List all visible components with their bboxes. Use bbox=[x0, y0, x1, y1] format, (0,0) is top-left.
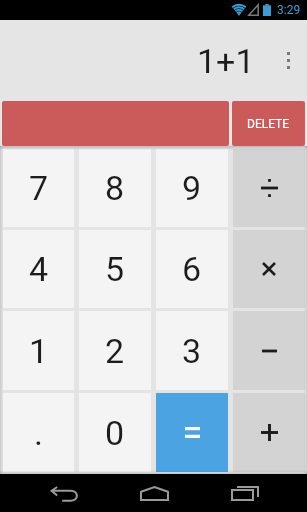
button[interactable]: 2 bbox=[79, 311, 151, 390]
button[interactable]: 5 bbox=[79, 230, 151, 308]
staticText: 6 bbox=[182, 249, 202, 289]
button[interactable]: DELETE bbox=[232, 101, 305, 146]
button[interactable]: Recent apps bbox=[204, 474, 286, 512]
staticText: DELETE bbox=[247, 117, 290, 131]
staticText: 3 bbox=[182, 331, 202, 371]
staticText: 1 bbox=[29, 331, 49, 371]
button[interactable]: 0 bbox=[79, 393, 151, 472]
button[interactable] bbox=[233, 311, 305, 390]
button[interactable]: 4 bbox=[3, 230, 74, 308]
button[interactable]: Home bbox=[113, 474, 195, 512]
staticText: 9 bbox=[182, 168, 202, 208]
button[interactable]: 1 bbox=[3, 311, 74, 390]
staticText: 4 bbox=[29, 249, 49, 289]
button[interactable]: . bbox=[3, 393, 74, 472]
staticText: 7 bbox=[29, 168, 49, 208]
button[interactable] bbox=[156, 393, 228, 472]
staticText: 2 bbox=[105, 331, 125, 371]
button[interactable] bbox=[233, 149, 305, 227]
staticText: 3:29 bbox=[277, 3, 301, 17]
button[interactable]: 7 bbox=[3, 149, 74, 227]
button[interactable]: 6 bbox=[156, 230, 228, 308]
staticText: 1+1 bbox=[197, 41, 255, 81]
button[interactable]: 8 bbox=[79, 149, 151, 227]
button[interactable]: More options bbox=[269, 20, 307, 101]
staticText: . bbox=[34, 413, 43, 453]
staticText: 8 bbox=[105, 168, 125, 208]
button[interactable]: 9 bbox=[156, 149, 228, 227]
staticText: 5 bbox=[105, 249, 125, 289]
staticText: 0 bbox=[105, 413, 125, 453]
button[interactable] bbox=[233, 230, 305, 308]
button[interactable]: 3 bbox=[156, 311, 228, 390]
button[interactable] bbox=[233, 393, 305, 472]
button[interactable]: Back bbox=[24, 474, 106, 512]
